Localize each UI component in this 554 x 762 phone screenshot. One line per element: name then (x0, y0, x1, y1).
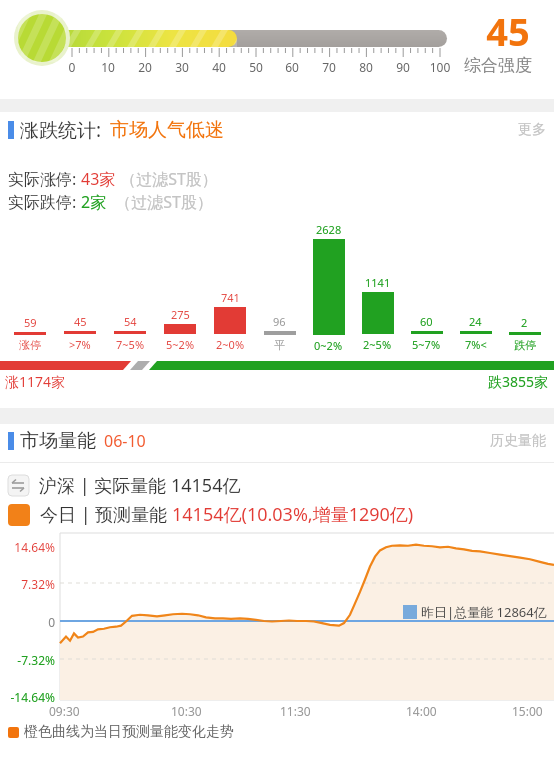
staticText: 1141 (365, 275, 391, 290)
staticText: （过滤ST股） (107, 191, 214, 213)
staticText: >7% (69, 337, 91, 352)
staticText: -14.64% (0, 689, 55, 705)
staticText: 09:30 (49, 703, 80, 719)
staticText: 60 (278, 59, 306, 75)
button[interactable]: 今日 | 预测量能 (8, 502, 414, 527)
staticText: 80 (352, 59, 380, 75)
staticText: 市场量能 (20, 429, 96, 453)
staticText: 0~2% (314, 338, 343, 352)
staticText: 7.32% (0, 576, 55, 592)
staticText: 更多 (518, 121, 546, 139)
staticText: 沪深 | 实际量能 14154亿 (39, 473, 241, 498)
staticText: 06-10 (104, 430, 146, 452)
staticText: 历史量能 (490, 432, 546, 450)
staticText: 60 (420, 314, 433, 329)
button[interactable]: 沪深 | 实际量能 14154亿 (8, 473, 241, 498)
staticText: 30 (168, 59, 196, 75)
staticText: 平 (274, 338, 285, 352)
staticText: 90 (389, 59, 417, 75)
staticText: 40 (205, 59, 233, 75)
staticText: 5~2% (166, 337, 195, 352)
staticText: -7.32% (0, 652, 55, 668)
staticText: 24 (469, 314, 482, 329)
staticText: 96 (273, 314, 286, 329)
staticText: 实际跌停: (8, 191, 81, 213)
staticText: 橙色曲线为当日预测量能变化走势 (24, 723, 234, 741)
staticText: 2家 (81, 191, 107, 213)
staticText: 20 (131, 59, 159, 75)
staticText: 今日 | 预测量能 (40, 502, 172, 527)
staticText: 0 (58, 59, 86, 75)
staticText: 45 (74, 314, 87, 329)
staticText: 综合强度 (464, 55, 532, 76)
staticText: 70 (315, 59, 343, 75)
staticText: 14154亿(10.03%,增量1290亿) (172, 502, 414, 527)
staticText: （过滤ST股） (116, 168, 218, 190)
staticText: 50 (242, 59, 270, 75)
staticText: 0 (0, 614, 55, 630)
staticText: 15:00 (512, 703, 543, 719)
staticText: 市场人气低迷 (110, 118, 224, 142)
staticText: 54 (124, 314, 137, 329)
button[interactable]: 涨跌统计: (8, 117, 546, 143)
staticText: 14.64% (0, 539, 55, 555)
staticText: 2628 (316, 222, 342, 237)
staticText: 跌3855家 (488, 372, 549, 391)
staticText: 275 (171, 307, 190, 322)
staticText: 7%< (465, 337, 487, 352)
staticText: 14:00 (406, 703, 437, 719)
staticText: 45 (468, 5, 548, 57)
staticText: 59 (24, 315, 37, 330)
staticText: 2~0% (216, 337, 245, 352)
staticText: 43家 (81, 168, 116, 190)
staticText: 实际涨停: (8, 168, 81, 190)
staticText: 10:30 (171, 703, 202, 719)
staticText: 涨1174家 (5, 372, 66, 391)
staticText: 昨日|总量能 12864亿 (421, 603, 547, 621)
button[interactable]: 市场量能 (8, 429, 546, 453)
staticText: 5~7% (412, 337, 441, 352)
staticText: 跌停 (514, 338, 536, 352)
staticText: 涨跌统计: (20, 117, 102, 143)
staticText: 7~5% (116, 337, 145, 352)
staticText: 11:30 (280, 703, 311, 719)
staticText: 10 (94, 59, 122, 75)
staticText: 2~5% (363, 337, 392, 352)
staticText: 100 (426, 59, 454, 75)
staticText: 741 (221, 290, 240, 305)
staticText: 2 (521, 315, 528, 330)
staticText: 涨停 (19, 338, 41, 352)
